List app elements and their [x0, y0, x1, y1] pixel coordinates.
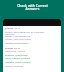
- staticText: Melbourne, Victoria: [5, 50, 26, 53]
- staticText: Brisbane, Queensland: [5, 54, 28, 57]
- staticText: Question 2 of 10: [5, 47, 20, 50]
- staticText: Hobart, Tasmania: [5, 65, 24, 68]
- staticText: Check with Correct Answers: [17, 3, 48, 11]
- staticText: Canberra is the capital: [5, 42, 28, 45]
- staticText: Sydney, New South Wales: [5, 38, 32, 41]
- staticText: Your answer: [5, 33, 15, 35]
- staticText: Question 1 of 10: [5, 27, 20, 30]
- staticText: Adelaide, South Australia: [5, 61, 31, 64]
- button[interactable]: Check with Correct Answers: [1, 0, 63, 19]
- staticText: Perth, Western Australia: [5, 57, 30, 60]
- staticText: Sydney is the capital of it: [5, 35, 31, 38]
- staticText: What is the capital city of Australia?: [5, 30, 45, 33]
